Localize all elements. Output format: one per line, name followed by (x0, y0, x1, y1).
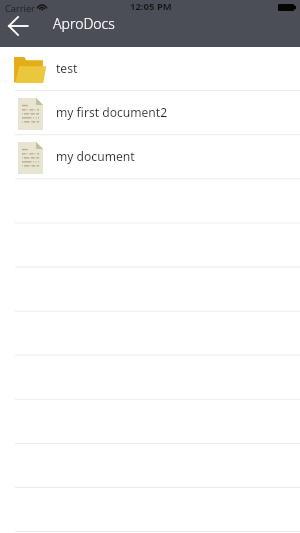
staticText: AproDocs (53, 14, 115, 33)
button[interactable]: my document (0, 135, 300, 179)
staticText: my first document2 (56, 104, 168, 120)
staticText: 12:05 PM (130, 0, 172, 13)
staticText: test (56, 60, 78, 76)
staticText: Carrier (5, 2, 35, 15)
button[interactable]: my first document2 (0, 91, 300, 135)
button[interactable]: test (0, 47, 300, 91)
staticText: my document (56, 148, 135, 164)
button[interactable]: Back (0, 9, 36, 43)
